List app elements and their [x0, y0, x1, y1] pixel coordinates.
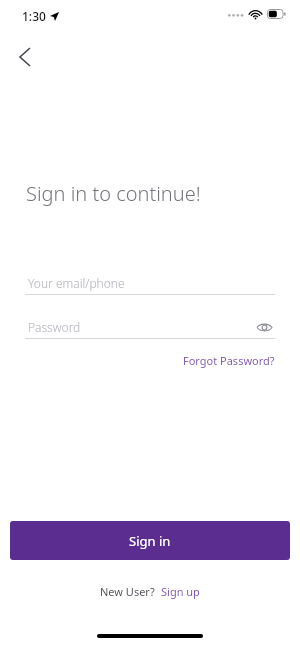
staticText: Forgot Password?: [183, 353, 275, 368]
button[interactable]: Sign up: [161, 584, 200, 599]
button[interactable]: Sign in: [10, 521, 290, 560]
staticText: Sign up: [161, 584, 200, 599]
button[interactable]: Show password: [253, 316, 275, 338]
staticText: 1:30: [22, 8, 46, 24]
button[interactable]: Password: [25, 314, 275, 340]
button[interactable]: Forgot Password?: [180, 350, 275, 370]
staticText: New User?: [100, 584, 155, 599]
staticText: Sign in to continue!: [26, 180, 201, 207]
staticText: Sign in: [129, 532, 171, 550]
button[interactable]: Your email/phone: [25, 270, 275, 296]
staticText: Password: [28, 319, 81, 335]
button[interactable]: Back: [8, 40, 42, 74]
staticText: Your email/phone: [28, 275, 125, 291]
